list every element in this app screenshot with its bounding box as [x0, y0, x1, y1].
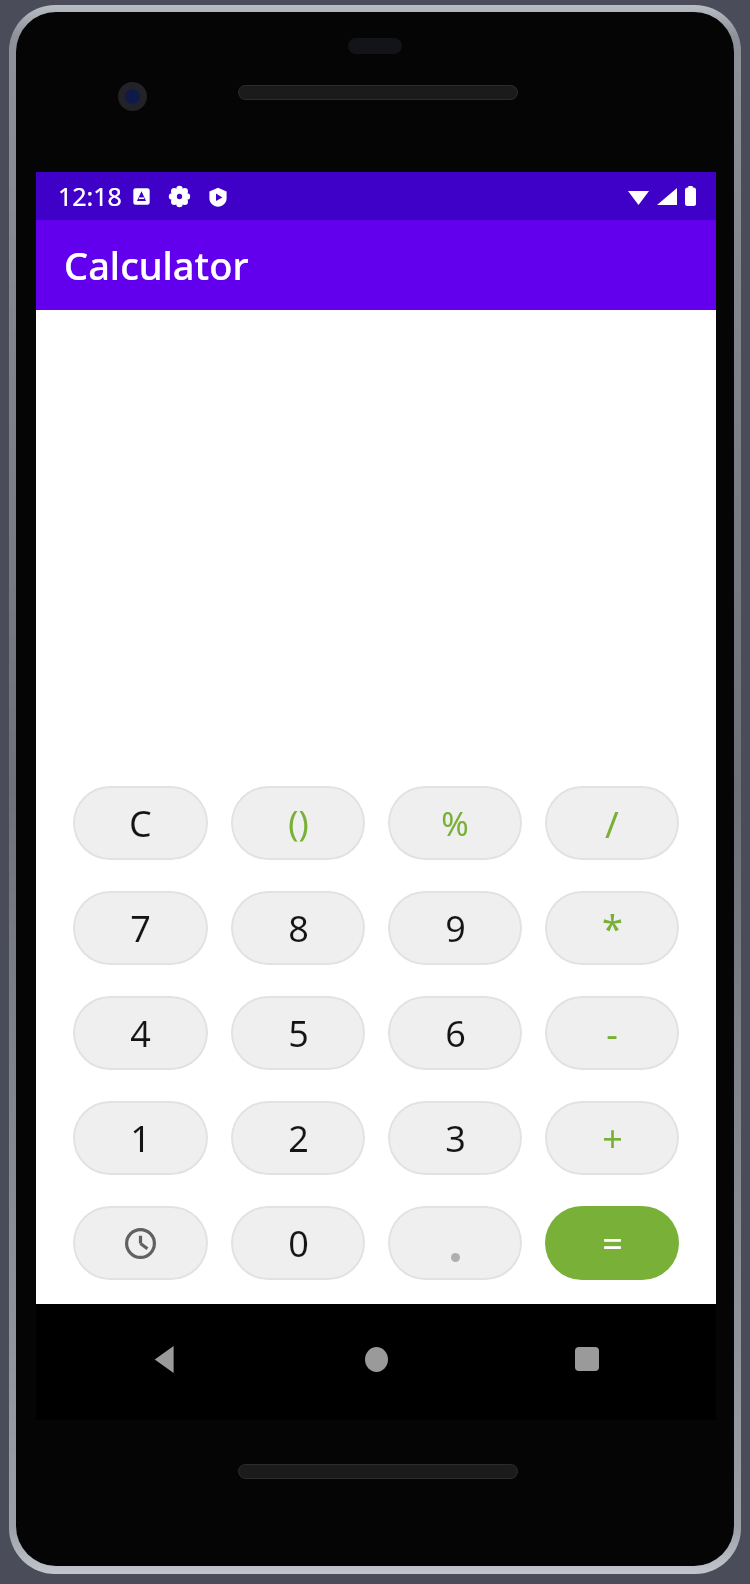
button[interactable]: 6	[388, 996, 522, 1070]
button[interactable]: Back	[136, 1330, 194, 1388]
button[interactable]: 3	[388, 1101, 522, 1175]
button[interactable]: Decimal point	[388, 1206, 522, 1280]
button[interactable]: Recent apps	[558, 1330, 616, 1388]
button[interactable]: 0	[231, 1206, 365, 1280]
button[interactable]: 9	[388, 891, 522, 965]
staticText: -	[606, 1009, 618, 1058]
staticText: 1	[130, 1114, 151, 1163]
staticText: 5	[288, 1009, 309, 1058]
button[interactable]: %	[388, 786, 522, 860]
button[interactable]: 4	[73, 996, 208, 1070]
staticText: =	[602, 1219, 623, 1268]
staticText: 12:18	[58, 179, 122, 213]
button[interactable]: 1	[73, 1101, 208, 1175]
button[interactable]: C	[73, 786, 208, 860]
staticText: 2	[288, 1114, 309, 1163]
button[interactable]: ()	[231, 786, 365, 860]
staticText: 9	[445, 904, 466, 953]
button[interactable]: Home	[347, 1330, 405, 1388]
button[interactable]: 5	[231, 996, 365, 1070]
staticText: ()	[288, 800, 309, 846]
button[interactable]: 7	[73, 891, 208, 965]
button[interactable]: =	[545, 1206, 679, 1280]
button[interactable]: -	[545, 996, 679, 1070]
button[interactable]: +	[545, 1101, 679, 1175]
staticText: %	[441, 801, 469, 846]
staticText: /	[605, 798, 619, 848]
staticText: Calculator	[64, 239, 249, 291]
staticText: *	[602, 902, 623, 954]
staticText: C	[129, 799, 152, 848]
staticText: 8	[288, 904, 309, 953]
staticText: +	[602, 1114, 623, 1163]
staticText: 6	[445, 1009, 466, 1058]
button[interactable]: *	[545, 891, 679, 965]
button[interactable]: History	[73, 1206, 208, 1280]
staticText: 0	[288, 1219, 309, 1268]
button[interactable]: 2	[231, 1101, 365, 1175]
button[interactable]: 8	[231, 891, 365, 965]
staticText: 7	[130, 904, 151, 953]
staticText: 4	[130, 1009, 151, 1058]
button[interactable]: /	[545, 786, 679, 860]
staticText: 3	[445, 1114, 466, 1163]
